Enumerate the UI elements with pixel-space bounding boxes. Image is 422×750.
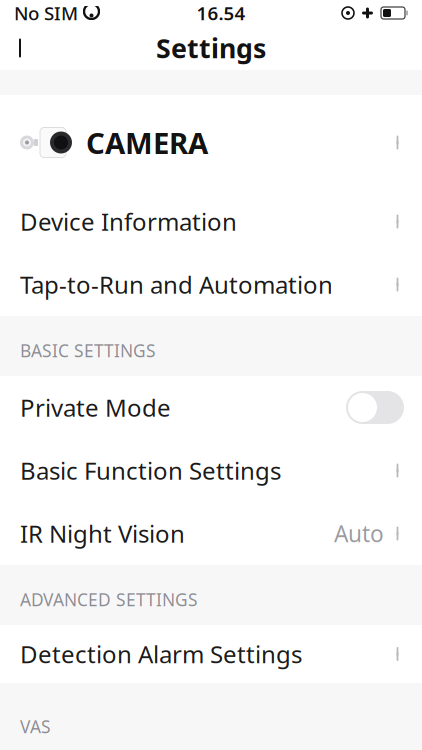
staticText: Device Information [20, 206, 237, 237]
staticText: Basic Function Settings [20, 455, 281, 486]
staticText: No SIM [14, 1, 78, 25]
button[interactable]: CAMERA [0, 95, 422, 190]
button[interactable]: Private Mode [0, 376, 422, 439]
staticText: BASIC SETTINGS [20, 339, 156, 362]
staticText: Tap-to-Run and Automation [20, 269, 333, 300]
staticText: Auto [334, 518, 384, 548]
staticText: Settings [156, 30, 266, 66]
staticText: IR Night Vision [20, 518, 185, 549]
button[interactable]: Back [0, 26, 44, 70]
button[interactable]: IR Night Vision [0, 502, 422, 565]
staticText: CAMERA [86, 123, 208, 162]
staticText: Detection Alarm Settings [20, 638, 302, 670]
staticText: ADVANCED SETTINGS [20, 588, 198, 611]
staticText: Private Mode [20, 392, 171, 423]
button[interactable]: Device Information [0, 190, 422, 253]
button[interactable]: Tap-to-Run and Automation [0, 253, 422, 316]
button[interactable]: Detection Alarm Settings [0, 625, 422, 683]
staticText: 16.54 [196, 1, 245, 25]
button[interactable]: Basic Function Settings [0, 439, 422, 502]
staticText: VAS [20, 715, 51, 738]
